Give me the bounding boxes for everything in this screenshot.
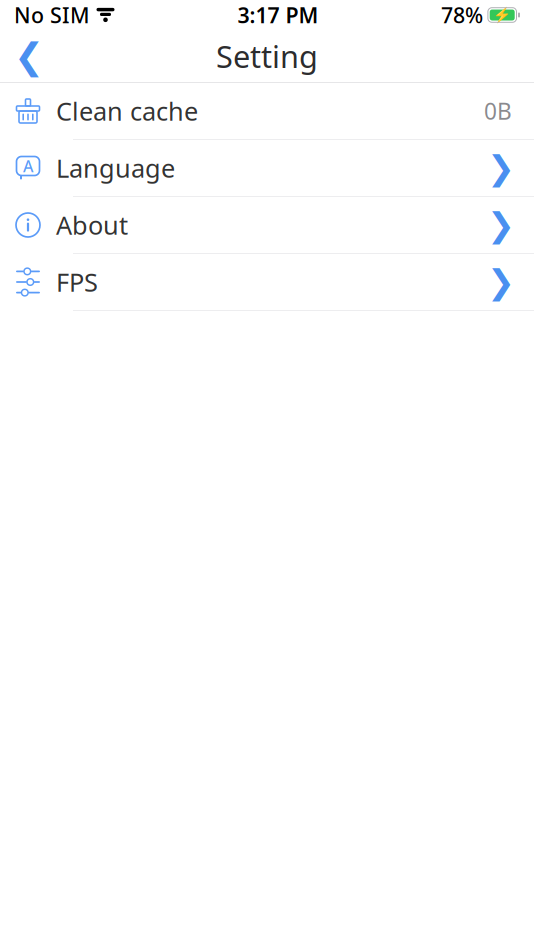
- staticText: No SIM: [14, 1, 90, 29]
- staticText: About: [56, 208, 128, 242]
- staticText: Setting: [216, 36, 318, 76]
- staticText: 78%: [441, 1, 483, 29]
- staticText: ⚡: [493, 7, 511, 23]
- staticText: ❯: [487, 206, 515, 244]
- button[interactable]: About: [0, 197, 534, 254]
- button[interactable]: FPS: [0, 254, 534, 311]
- button[interactable]: Back: [0, 30, 58, 82]
- button[interactable]: A: [0, 140, 534, 197]
- staticText: Clean cache: [56, 94, 198, 128]
- staticText: FPS: [56, 265, 98, 299]
- staticText: 0B: [484, 96, 512, 126]
- staticText: ❯: [487, 149, 515, 187]
- staticText: Language: [56, 151, 175, 185]
- staticText: 3:17 PM: [237, 1, 318, 29]
- staticText: A: [23, 155, 33, 177]
- button[interactable]: Clean cache: [0, 83, 534, 140]
- staticText: ❯: [487, 263, 515, 301]
- staticText: ❮: [14, 36, 44, 76]
